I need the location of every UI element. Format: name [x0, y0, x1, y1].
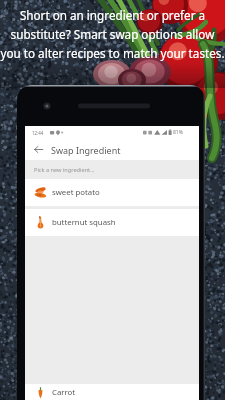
- staticText: butternut squash: [52, 217, 116, 228]
- button[interactable]: Carrot: [25, 384, 199, 400]
- staticText: sweet potato: [52, 187, 100, 198]
- button[interactable]: Back: [25, 139, 51, 160]
- button[interactable]: butternut squash: [25, 209, 199, 236]
- staticText: Pick a new ingredient...: [34, 166, 95, 174]
- staticText: 12:44: [32, 130, 44, 136]
- staticText: Carrot: [52, 387, 76, 398]
- staticText: 81%: [173, 129, 183, 136]
- button[interactable]: sweet potato: [25, 179, 199, 206]
- staticText: Short on an ingredient or prefer a subst…: [0, 7, 225, 62]
- staticText: Swap Ingredient: [51, 144, 121, 156]
